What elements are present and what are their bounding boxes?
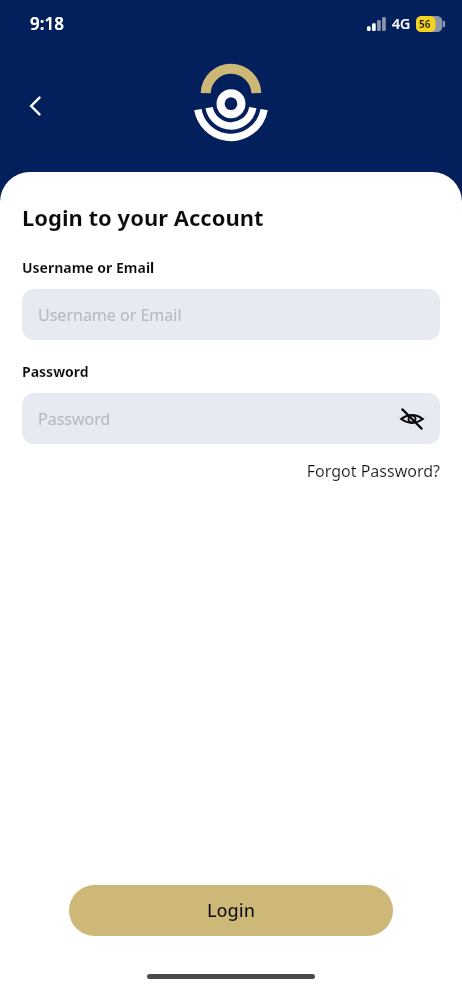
staticText: Username or Email — [38, 304, 182, 326]
staticText: 56 — [419, 17, 431, 31]
staticText: Password — [38, 408, 111, 430]
button[interactable]: Forgot Password? — [306, 458, 462, 484]
staticText: Password — [22, 362, 89, 381]
staticText: 4G — [392, 14, 411, 33]
button[interactable]: Show password — [392, 399, 432, 439]
staticText: Login — [207, 898, 255, 923]
button[interactable]: Password — [22, 393, 440, 444]
button[interactable]: Login — [69, 885, 393, 936]
staticText: 9:18 — [30, 12, 64, 35]
button[interactable]: Back — [12, 82, 60, 130]
staticText: Username or Email — [22, 258, 155, 277]
staticText: Login to your Account — [22, 202, 264, 232]
button[interactable]: Username or Email — [22, 289, 440, 340]
